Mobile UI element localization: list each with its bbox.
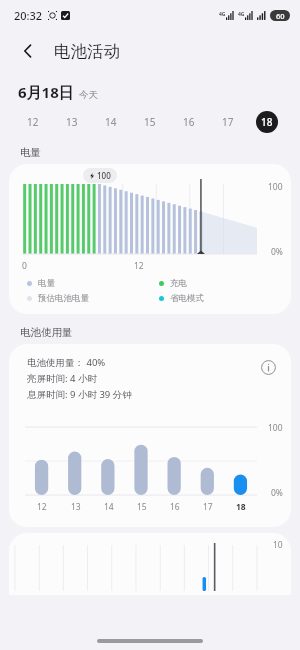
- staticText: 亮屏时间: 4 小时: [27, 372, 97, 385]
- staticText: 20:32: [14, 8, 43, 23]
- staticText: 15: [137, 501, 147, 513]
- staticText: 17: [222, 115, 234, 129]
- button[interactable]: 100: [9, 164, 291, 314]
- staticText: 10: [273, 539, 283, 551]
- staticText: 13: [71, 501, 81, 513]
- button[interactable]: 15: [130, 106, 169, 138]
- button[interactable]: 10: [9, 533, 291, 595]
- staticText: 4G: [219, 11, 226, 18]
- button[interactable]: 13: [52, 106, 91, 138]
- button[interactable]: 14: [91, 106, 130, 138]
- staticText: 18: [236, 501, 246, 513]
- staticText: 100: [268, 181, 283, 193]
- button[interactable]: 16: [169, 106, 208, 138]
- staticText: 电池使用量: [20, 326, 73, 339]
- button[interactable]: Info: [257, 356, 279, 378]
- staticText: 0%: [271, 487, 283, 499]
- staticText: 电池活动: [54, 41, 120, 62]
- staticText: 60: [276, 11, 285, 21]
- staticText: 电量: [20, 146, 41, 159]
- staticText: 充电: [170, 278, 187, 289]
- staticText: 12: [37, 501, 47, 513]
- button[interactable]: 18: [247, 106, 286, 138]
- staticText: 省电模式: [170, 293, 204, 304]
- staticText: 预估电池电量: [38, 293, 89, 304]
- button[interactable]: Back: [12, 35, 44, 67]
- staticText: 13: [66, 115, 78, 129]
- button[interactable]: 电池使用量： 40%: [9, 344, 291, 527]
- staticText: 17: [203, 501, 213, 513]
- staticText: 0: [22, 260, 27, 272]
- staticText: 12: [134, 260, 144, 272]
- staticText: 14: [105, 115, 117, 129]
- staticText: 16: [170, 501, 180, 513]
- staticText: 16: [183, 115, 195, 129]
- staticText: 息屏时间: 9 小时 39 分钟: [27, 388, 132, 401]
- staticText: 0%: [271, 246, 283, 258]
- button[interactable]: 12: [14, 106, 52, 138]
- staticText: 今天: [79, 89, 98, 101]
- staticText: 4G: [238, 11, 245, 18]
- staticText: 15: [144, 115, 156, 129]
- staticText: 18: [261, 115, 273, 129]
- button[interactable]: 17: [208, 106, 247, 138]
- staticText: 12: [27, 115, 39, 129]
- staticText: 电量: [38, 278, 55, 289]
- staticText: 100: [268, 422, 283, 434]
- staticText: 电池使用量： 40%: [27, 356, 106, 369]
- staticText: 100: [97, 170, 111, 181]
- staticText: 6月18日: [18, 82, 74, 102]
- staticText: 14: [104, 501, 114, 513]
